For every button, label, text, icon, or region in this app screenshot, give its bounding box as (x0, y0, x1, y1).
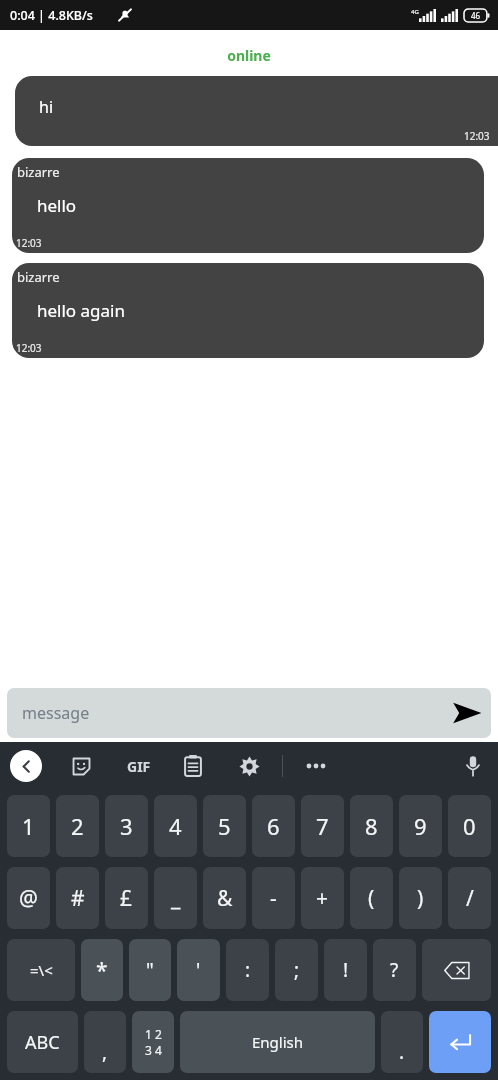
button[interactable]: hi (15, 76, 498, 146)
button[interactable]: Numbers (132, 1011, 174, 1073)
staticText: 0:04 | 4.8KB/s (10, 7, 93, 24)
staticText: _ (171, 884, 181, 913)
button[interactable]: 6 (252, 795, 295, 857)
button[interactable]: + (301, 867, 344, 929)
button[interactable]: message (7, 688, 491, 738)
staticText: 46 (471, 10, 481, 21)
button[interactable]: 1 (7, 795, 50, 857)
button[interactable]: , (84, 1011, 126, 1073)
staticText: GIF (127, 757, 151, 776)
staticText: ABC (25, 1030, 60, 1055)
button[interactable]: " (129, 939, 171, 1001)
staticText: - (270, 884, 277, 913)
staticText: ; (294, 957, 300, 983)
button[interactable]: =\< (7, 939, 75, 1001)
staticText: 12:03 (16, 236, 42, 250)
button[interactable]: GIF (122, 750, 156, 782)
staticText: @ (19, 884, 38, 913)
staticText: ' (196, 957, 201, 983)
staticText: 8 (365, 811, 378, 841)
button[interactable]: ) (399, 867, 442, 929)
button[interactable]: English (180, 1011, 375, 1073)
button[interactable]: # (56, 867, 99, 929)
staticText: 4 (169, 811, 182, 841)
button[interactable]: / (448, 867, 491, 929)
button[interactable]: ( (350, 867, 393, 929)
staticText: " (146, 957, 154, 983)
staticText: + (316, 884, 329, 913)
button[interactable]: 9 (399, 795, 442, 857)
button[interactable]: . (381, 1011, 423, 1073)
button[interactable]: ' (177, 939, 220, 1001)
button[interactable]: Backspace (422, 939, 491, 1001)
button[interactable]: & (203, 867, 246, 929)
staticText: 0 (463, 811, 476, 841)
staticText: bizarre (17, 163, 60, 181)
button[interactable]: bizarre (12, 263, 484, 358)
button[interactable]: Sticker (66, 751, 96, 781)
staticText: 3 (120, 811, 133, 841)
staticText: message (22, 702, 443, 724)
staticText: hello (37, 194, 77, 217)
staticText: ( (368, 884, 375, 913)
staticText: & (217, 884, 233, 913)
button[interactable]: Clipboard (178, 751, 208, 781)
button[interactable]: @ (7, 867, 50, 929)
button[interactable]: ! (324, 939, 367, 1001)
staticText: 9 (414, 811, 427, 841)
button[interactable]: Settings (234, 751, 264, 781)
button[interactable]: 4 (154, 795, 197, 857)
staticText: 2 (71, 811, 84, 841)
staticText: . (399, 1039, 405, 1065)
staticText: * (96, 956, 108, 985)
staticText: 12:03 (464, 129, 490, 143)
staticText: , (102, 1039, 108, 1065)
button[interactable]: 2 (56, 795, 99, 857)
staticText: bizarre (17, 268, 60, 286)
button[interactable]: £ (105, 867, 148, 929)
staticText: English (252, 1032, 304, 1052)
staticText: : (245, 957, 251, 983)
button[interactable]: Enter (429, 1011, 491, 1073)
staticText: / (466, 884, 474, 913)
button[interactable]: 8 (350, 795, 393, 857)
button[interactable]: * (81, 939, 123, 1001)
staticText: hello again (37, 299, 125, 322)
staticText: 7 (316, 811, 329, 841)
button[interactable]: ABC (7, 1011, 78, 1073)
staticText: # (71, 884, 85, 913)
button[interactable]: Back (10, 750, 42, 782)
button[interactable]: ; (275, 939, 318, 1001)
button[interactable]: - (252, 867, 295, 929)
button[interactable]: bizarre (12, 158, 484, 253)
staticText: =\< (30, 960, 53, 980)
button[interactable]: More options (301, 751, 331, 781)
staticText: ? (390, 957, 399, 983)
staticText: £ (120, 884, 133, 913)
staticText: online (0, 46, 498, 65)
staticText: 6 (267, 811, 280, 841)
button[interactable]: 0 (448, 795, 491, 857)
staticText: 3 4 (145, 1042, 162, 1058)
button[interactable]: _ (154, 867, 197, 929)
staticText: 12:03 (16, 341, 42, 355)
staticText: 1 (22, 811, 35, 841)
staticText: 4G (411, 8, 419, 16)
button[interactable]: Voice input (458, 751, 488, 781)
staticText: ! (343, 957, 349, 983)
staticText: 1 2 (145, 1026, 162, 1042)
staticText: hi (39, 96, 54, 118)
staticText: ) (417, 884, 424, 913)
button[interactable]: 5 (203, 795, 246, 857)
button[interactable]: ? (373, 939, 416, 1001)
button[interactable]: 7 (301, 795, 344, 857)
staticText: 5 (218, 811, 231, 841)
button[interactable]: 3 (105, 795, 148, 857)
button[interactable]: : (226, 939, 269, 1001)
button[interactable]: Send (443, 689, 491, 737)
